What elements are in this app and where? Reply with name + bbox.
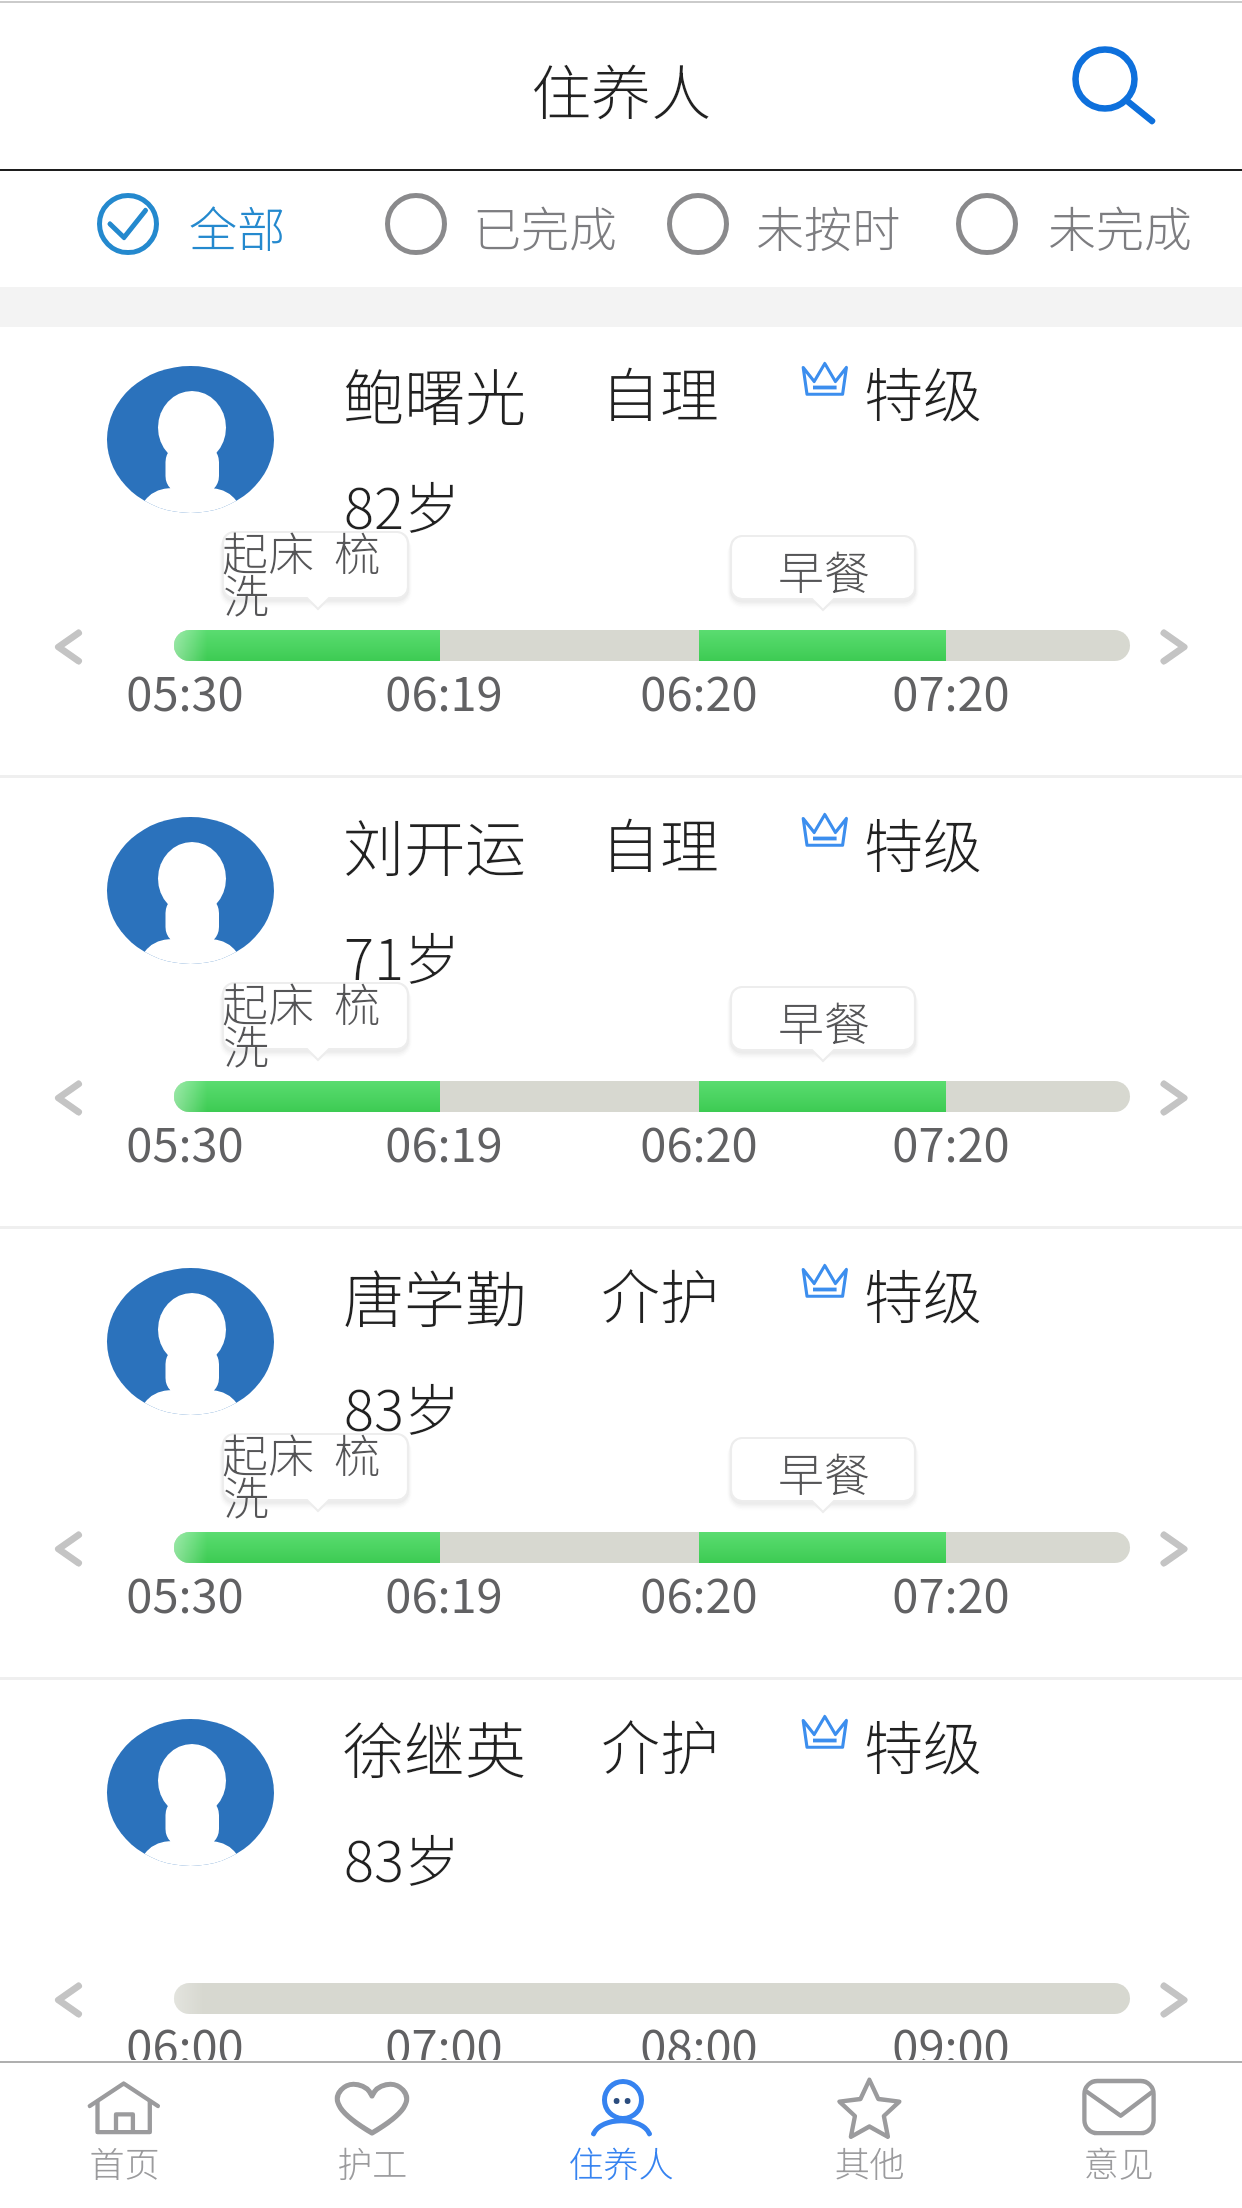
staticText: 特级 bbox=[864, 349, 983, 434]
button[interactable]: Previous bbox=[30, 1517, 100, 1581]
staticText: 特级 bbox=[864, 1251, 983, 1336]
staticText: 介护 bbox=[601, 1251, 720, 1336]
staticText: 洗 bbox=[223, 1011, 269, 1078]
staticText: 特级 bbox=[864, 1702, 983, 1787]
staticText: 自理 bbox=[601, 349, 720, 434]
button[interactable]: 护工 bbox=[248, 2063, 496, 2208]
button[interactable]: 意见 bbox=[994, 2063, 1242, 2208]
staticText: 83岁 bbox=[344, 1366, 460, 1447]
staticText: 住养人 bbox=[531, 45, 711, 132]
button[interactable]: Next bbox=[1141, 1968, 1211, 2032]
staticText: 07:20 bbox=[892, 1107, 1010, 1175]
staticText: 06:19 bbox=[385, 1558, 503, 1626]
staticText: 洗 bbox=[223, 560, 269, 627]
staticText: 06:00 bbox=[126, 2009, 244, 2060]
button[interactable]: 鲍曙光 bbox=[0, 327, 1242, 778]
button[interactable]: 全部 bbox=[83, 175, 295, 283]
staticText: 08:00 bbox=[640, 2009, 758, 2060]
button[interactable]: Next bbox=[1141, 1517, 1211, 1581]
staticText: 06:20 bbox=[640, 656, 758, 724]
button[interactable]: Previous bbox=[30, 1968, 100, 2032]
staticText: 06:19 bbox=[385, 656, 503, 724]
staticText: 首页 bbox=[89, 2136, 160, 2187]
staticText: 起床 梳 bbox=[222, 969, 381, 1036]
staticText: 早餐 bbox=[778, 988, 870, 1055]
staticText: 未按时 bbox=[756, 191, 901, 261]
staticText: 刘开运 bbox=[343, 800, 527, 888]
staticText: 已完成 bbox=[473, 191, 618, 261]
staticText: 自理 bbox=[601, 800, 720, 885]
button[interactable]: Next bbox=[1141, 615, 1211, 679]
staticText: 洗 bbox=[223, 1462, 269, 1529]
button[interactable]: 唐学勤 bbox=[0, 1229, 1242, 1680]
staticText: 起床 梳 bbox=[222, 518, 381, 585]
staticText: 09:00 bbox=[892, 2009, 1010, 2060]
button[interactable]: Search bbox=[1057, 31, 1153, 127]
staticText: 05:30 bbox=[126, 1107, 244, 1175]
button[interactable]: 刘开运 bbox=[0, 778, 1242, 1229]
staticText: 意见 bbox=[1083, 2136, 1154, 2187]
staticText: 07:20 bbox=[892, 1558, 1010, 1626]
staticText: 07:00 bbox=[385, 2009, 503, 2060]
button[interactable]: Next bbox=[1141, 1066, 1211, 1130]
staticText: 71岁 bbox=[344, 915, 460, 996]
button[interactable]: 未完成 bbox=[942, 175, 1200, 283]
button[interactable]: 首页 bbox=[0, 2063, 248, 2208]
staticText: 其他 bbox=[834, 2136, 905, 2187]
staticText: 鲍曙光 bbox=[343, 349, 527, 437]
staticText: 住养人 bbox=[568, 2136, 674, 2187]
button[interactable]: 住养人 bbox=[497, 2063, 745, 2208]
staticText: 83岁 bbox=[344, 1817, 460, 1898]
staticText: 05:30 bbox=[126, 656, 244, 724]
staticText: 早餐 bbox=[778, 537, 870, 604]
staticText: 护工 bbox=[337, 2136, 408, 2187]
staticText: 起床 梳 bbox=[222, 1420, 381, 1487]
button[interactable]: 已完成 bbox=[371, 175, 625, 283]
staticText: 82岁 bbox=[344, 464, 460, 545]
button[interactable]: 徐继英 bbox=[0, 1680, 1242, 2060]
staticText: 特级 bbox=[864, 800, 983, 885]
staticText: 06:19 bbox=[385, 1107, 503, 1175]
staticText: 未完成 bbox=[1048, 191, 1193, 261]
button[interactable]: 未按时 bbox=[653, 175, 908, 283]
staticText: 唐学勤 bbox=[343, 1251, 527, 1339]
staticText: 徐继英 bbox=[343, 1702, 527, 1790]
staticText: 06:20 bbox=[640, 1107, 758, 1175]
staticText: 全部 bbox=[189, 191, 286, 261]
button[interactable]: Previous bbox=[30, 615, 100, 679]
staticText: 06:20 bbox=[640, 1558, 758, 1626]
staticText: 07:20 bbox=[892, 656, 1010, 724]
button[interactable]: 其他 bbox=[745, 2063, 993, 2208]
staticText: 介护 bbox=[601, 1702, 720, 1787]
staticText: 05:30 bbox=[126, 1558, 244, 1626]
button[interactable]: Previous bbox=[30, 1066, 100, 1130]
staticText: 早餐 bbox=[778, 1439, 870, 1506]
